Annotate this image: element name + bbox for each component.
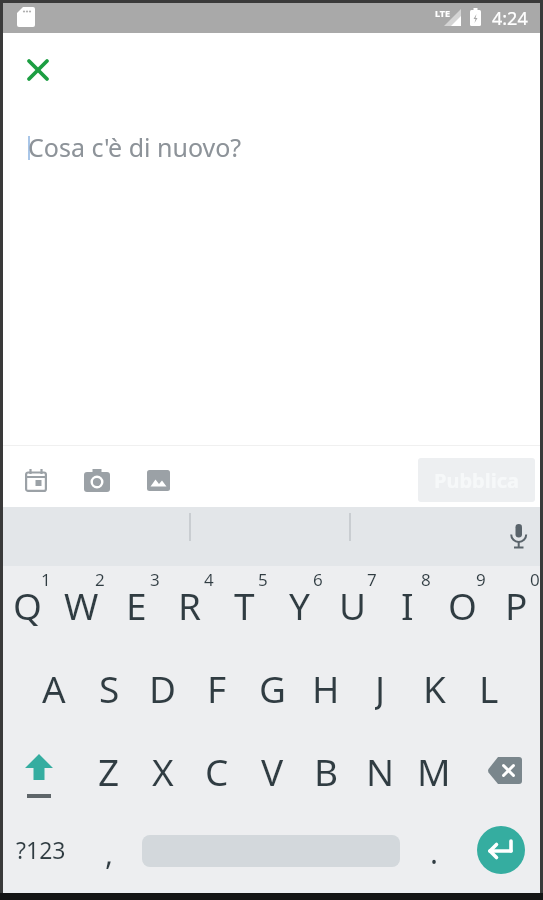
staticText: R xyxy=(178,580,202,628)
staticText: 9 xyxy=(476,568,486,591)
staticText: P xyxy=(505,580,528,628)
staticText: H xyxy=(312,663,340,711)
staticText: 6 xyxy=(313,568,323,591)
staticText: 5 xyxy=(258,568,268,591)
staticText: B xyxy=(314,746,339,794)
button[interactable]: E xyxy=(109,580,163,628)
button[interactable]: M xyxy=(407,746,461,794)
button[interactable]: I xyxy=(380,580,434,628)
staticText: I xyxy=(401,580,414,628)
staticText: L xyxy=(479,663,499,711)
button[interactable] xyxy=(12,744,66,800)
staticText: K xyxy=(423,663,446,711)
staticText: Pubblica xyxy=(434,467,519,494)
staticText: O xyxy=(448,580,477,628)
staticText: 2 xyxy=(95,568,105,591)
button[interactable]: P xyxy=(489,580,543,628)
staticText: J xyxy=(375,663,386,711)
staticText: 0 xyxy=(530,568,540,591)
staticText: N xyxy=(366,746,395,794)
staticText: 8 xyxy=(421,568,431,591)
staticText: 3 xyxy=(150,568,160,591)
staticText: U xyxy=(339,580,367,628)
button[interactable]: B xyxy=(299,746,353,794)
staticText: D xyxy=(149,663,177,711)
button[interactable]: J xyxy=(353,663,407,711)
staticText: Z xyxy=(98,746,120,794)
button[interactable]: L xyxy=(462,663,516,711)
button[interactable]: V xyxy=(245,746,299,794)
button[interactable]: D xyxy=(136,663,190,711)
staticText: S xyxy=(99,663,120,711)
staticText: , xyxy=(105,833,114,874)
staticText: E xyxy=(126,580,147,628)
staticText: X xyxy=(152,746,174,794)
staticText: ?123 xyxy=(16,834,66,865)
button[interactable]: O xyxy=(435,580,489,628)
staticText: 7 xyxy=(367,568,377,591)
button[interactable]: Q xyxy=(0,580,54,628)
button[interactable]: G xyxy=(245,663,299,711)
button[interactable] xyxy=(477,826,525,874)
staticText: W xyxy=(64,580,99,628)
button[interactable]: T xyxy=(217,580,271,628)
staticText: 1 xyxy=(41,568,51,591)
button[interactable] xyxy=(18,462,54,498)
button[interactable] xyxy=(500,518,536,556)
button[interactable]: H xyxy=(299,663,353,711)
staticText: M xyxy=(417,746,451,794)
staticText: F xyxy=(207,663,227,711)
button[interactable]: Z xyxy=(82,746,136,794)
button[interactable]: X xyxy=(136,746,190,794)
button[interactable] xyxy=(79,462,115,498)
button[interactable] xyxy=(18,50,58,90)
staticText: LTE xyxy=(435,7,451,19)
staticText: Y xyxy=(289,580,310,628)
button[interactable]: N xyxy=(353,746,407,794)
staticText: G xyxy=(259,663,286,711)
button[interactable]: F xyxy=(190,663,244,711)
staticText: C xyxy=(205,746,229,794)
button[interactable] xyxy=(480,746,530,794)
staticText: A xyxy=(42,663,66,711)
button[interactable]: A xyxy=(27,663,81,711)
staticText: T xyxy=(234,580,255,628)
button[interactable]: W xyxy=(54,580,108,628)
button[interactable]: Y xyxy=(272,580,326,628)
button[interactable]: R xyxy=(163,580,217,628)
button[interactable]: U xyxy=(326,580,380,628)
staticText: V xyxy=(261,746,284,794)
staticText: 4:24 xyxy=(492,6,528,31)
button[interactable]: K xyxy=(407,663,461,711)
staticText: . xyxy=(430,832,439,873)
staticText: Q xyxy=(13,580,42,628)
staticText: 4 xyxy=(204,568,214,591)
staticText: Cosa c'è di nuovo? xyxy=(28,130,242,164)
button[interactable] xyxy=(140,462,176,498)
button[interactable]: S xyxy=(82,663,136,711)
button[interactable]: C xyxy=(190,746,244,794)
